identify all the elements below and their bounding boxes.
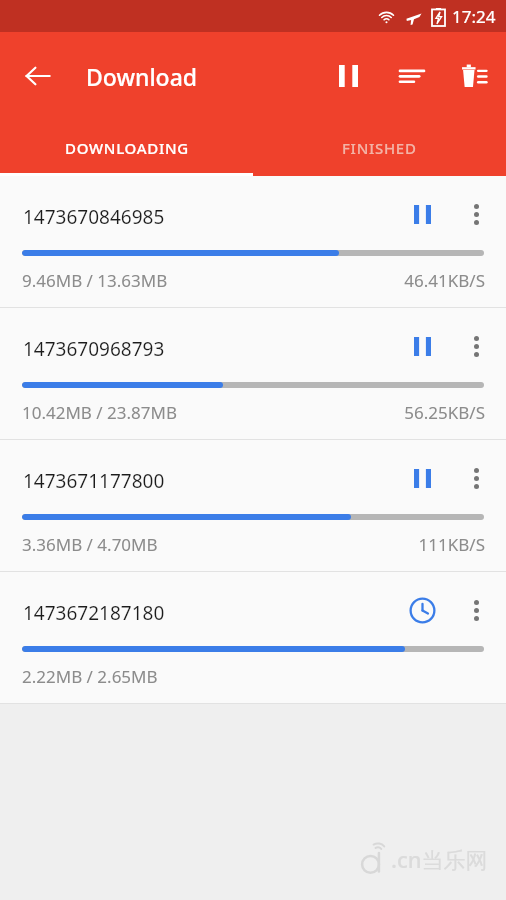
button[interactable]: 1473672187180 bbox=[0, 572, 506, 703]
staticText: Download bbox=[86, 61, 198, 92]
staticText: 46.41KB/S bbox=[404, 269, 485, 292]
staticText: 3.36MB / 4.70MB bbox=[22, 533, 158, 556]
button[interactable]: More options bbox=[454, 324, 498, 368]
staticText: 1473670968793 bbox=[23, 336, 165, 362]
staticText: 56.25KB/S bbox=[404, 401, 485, 424]
staticText: FINISHED bbox=[342, 138, 417, 158]
staticText: 111KB/S bbox=[418, 533, 485, 556]
button[interactable]: Back bbox=[14, 52, 62, 100]
button[interactable]: Pause bbox=[400, 324, 444, 368]
staticText: .cn当乐网 bbox=[391, 844, 488, 874]
staticText: 1473671177800 bbox=[23, 468, 165, 494]
staticText: 1473672187180 bbox=[23, 600, 165, 626]
staticText: 17:24 bbox=[452, 5, 496, 28]
button[interactable]: 1473670968793 bbox=[0, 308, 506, 439]
button[interactable]: 1473670846985 bbox=[0, 176, 506, 307]
staticText: DOWNLOADING bbox=[65, 138, 189, 158]
button[interactable]: Delete bbox=[450, 52, 498, 100]
button[interactable]: Pause all bbox=[324, 52, 372, 100]
button[interactable]: FINISHED bbox=[253, 120, 506, 176]
button[interactable]: DOWNLOADING bbox=[0, 120, 253, 176]
staticText: 9.46MB / 13.63MB bbox=[22, 269, 168, 292]
button[interactable]: Pause bbox=[400, 456, 444, 500]
button[interactable]: 1473671177800 bbox=[0, 440, 506, 571]
button[interactable]: Waiting bbox=[400, 588, 444, 632]
button[interactable]: More options bbox=[454, 192, 498, 236]
staticText: 1473670846985 bbox=[23, 204, 165, 230]
staticText: 10.42MB / 23.87MB bbox=[22, 401, 178, 424]
button[interactable]: More options bbox=[454, 588, 498, 632]
button[interactable]: Sort bbox=[388, 52, 436, 100]
button[interactable]: Pause bbox=[400, 192, 444, 236]
staticText: 2.22MB / 2.65MB bbox=[22, 665, 158, 688]
button[interactable]: More options bbox=[454, 456, 498, 500]
